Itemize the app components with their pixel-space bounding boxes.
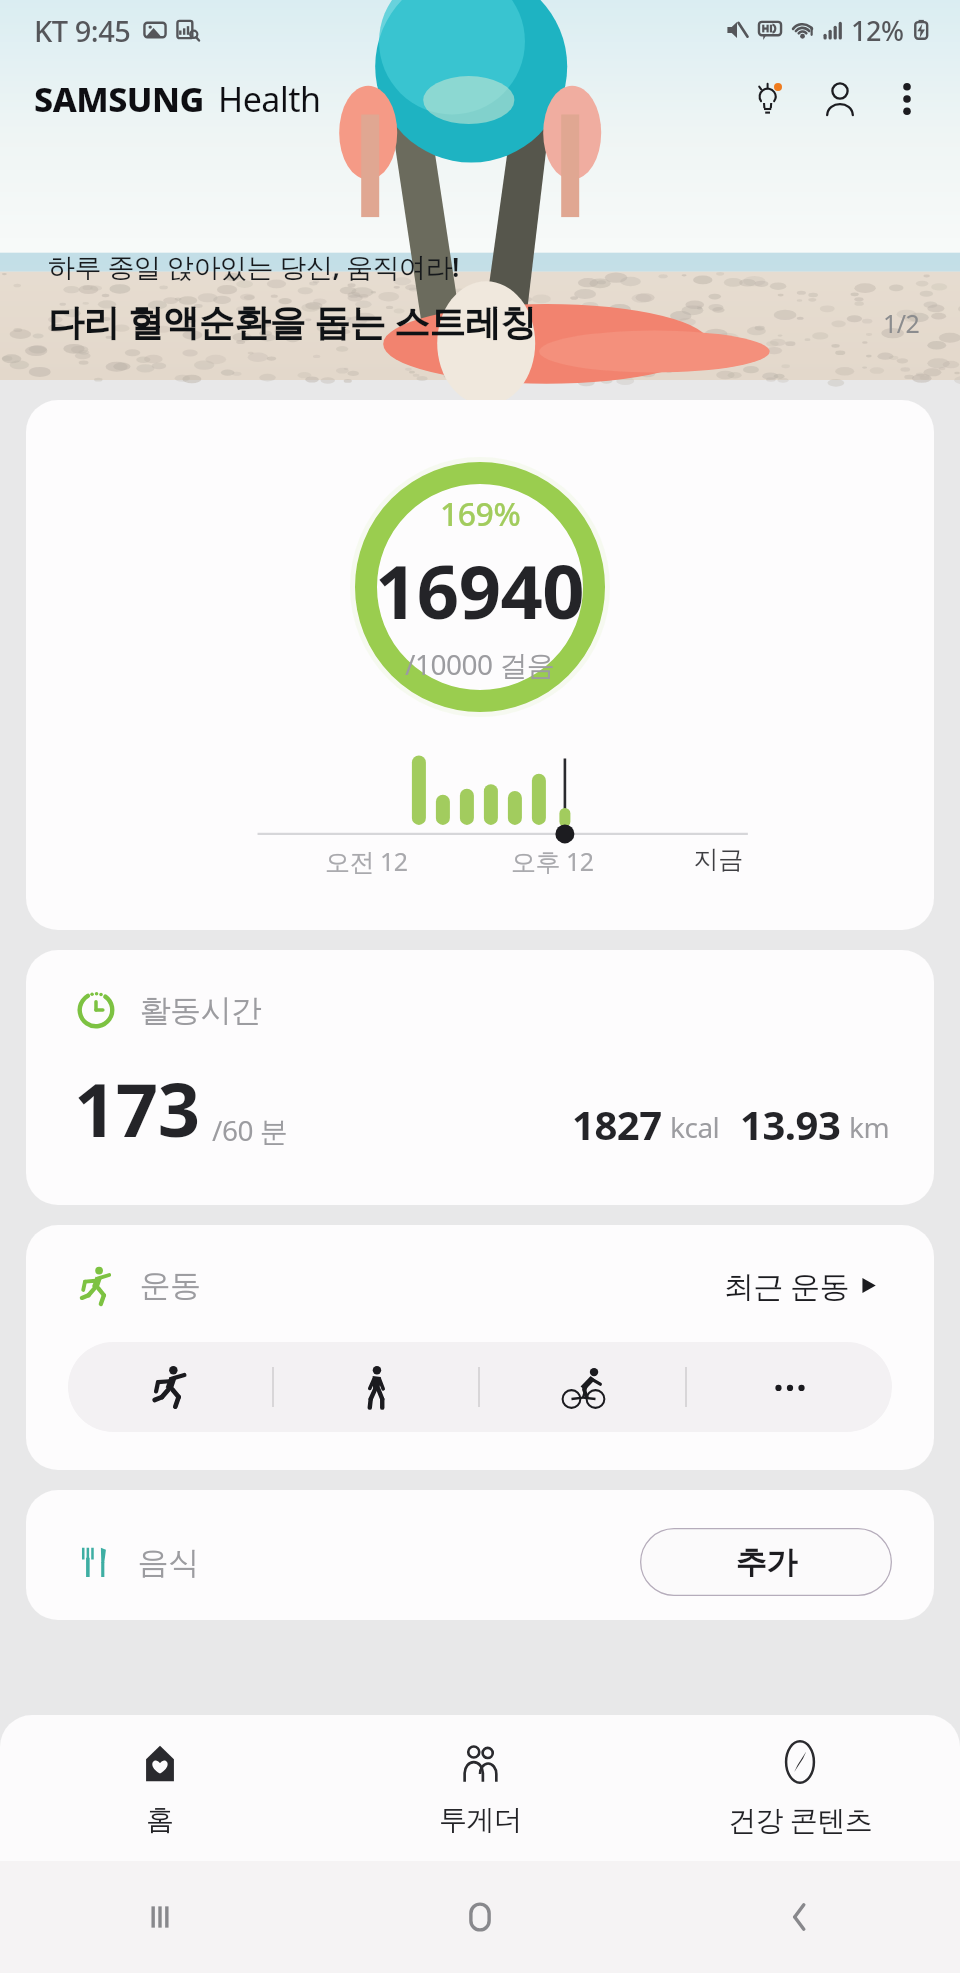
button[interactable]: Cycling [480,1342,685,1432]
button[interactable]: More options [882,74,932,124]
staticText: Health [218,76,321,122]
button[interactable]: Tips [742,71,798,127]
button[interactable]: Back [640,1861,960,1973]
staticText: 음식 [138,1543,199,1582]
staticText: 16940 [375,540,585,641]
staticText: 운동 [140,1266,201,1305]
button[interactable]: 건강 콘텐츠 [640,1715,960,1861]
button[interactable]: 음식 [26,1490,934,1620]
staticText: 홈 [146,1802,174,1837]
staticText: 하루 종일 앉아있는 당신, 움직여라! [48,248,460,285]
staticText: 173 [74,1058,200,1159]
staticText: 169% [440,492,521,536]
staticText: 건강 콘텐츠 [728,1800,873,1838]
button[interactable]: 추가 [640,1528,892,1596]
staticText: 다리 혈액순환을 돕는 스트레칭 [48,297,537,346]
staticText: 투게더 [439,1802,522,1837]
button[interactable]: Walking [274,1342,478,1432]
button[interactable]: Running [68,1342,272,1432]
button[interactable]: 투게더 [320,1715,640,1861]
staticText: /10000 걸음 [405,645,555,683]
staticText: 1827 [572,1097,662,1151]
staticText: /60 분 [212,1111,288,1149]
staticText: 추가 [736,1543,797,1582]
staticText: 최근 운동 [724,1265,850,1306]
staticText: 12% [851,12,904,49]
staticText: 오전 12 [325,844,408,878]
staticText: 13.93 [740,1097,841,1151]
staticText: km [849,1108,890,1146]
staticText: kcal [670,1108,720,1146]
button[interactable]: 최근 운동 [716,1259,886,1312]
staticText: SAMSUNG [34,76,204,122]
button[interactable]: Home [320,1861,640,1973]
button[interactable]: 169% [26,400,934,930]
button[interactable]: Recent apps [0,1861,320,1973]
button[interactable]: 활동시간 [26,950,934,1205]
staticText: 1/2 [883,306,920,340]
staticText: 오후 12 [511,844,594,878]
button[interactable]: More exercises [687,1342,892,1432]
staticText: 활동시간 [140,991,262,1030]
staticText: KT 9:45 [34,11,131,50]
button[interactable]: 홈 [0,1715,320,1861]
button[interactable]: Profile [812,71,868,127]
staticText: 지금 [694,844,743,875]
